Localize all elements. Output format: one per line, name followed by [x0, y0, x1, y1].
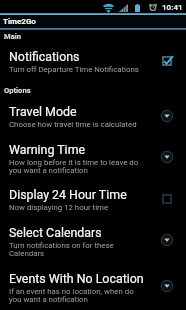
- staticText: 10:41: [162, 3, 183, 12]
- staticText: Travel Mode: [9, 104, 77, 119]
- staticText: Select Calendars: [9, 225, 102, 240]
- button[interactable]: Warning Time: [0, 135, 186, 181]
- staticText: Choose how travel time is calculated: [9, 120, 137, 129]
- staticText: How long before it is time to leave do y…: [9, 158, 139, 175]
- button[interactable]: Select Calendars: [0, 218, 186, 264]
- staticText: Options: [4, 86, 31, 95]
- staticText: Warning Time: [9, 142, 86, 157]
- button[interactable]: Travel Mode: [0, 98, 186, 135]
- staticText: Notifications: [9, 49, 80, 64]
- staticText: Turn off Departure Time Notifications: [9, 65, 139, 74]
- staticText: Now displaying 12 hour time: [9, 203, 109, 212]
- staticText: Display 24 Hour Time: [9, 187, 127, 202]
- staticText: If an event has no location, when do you…: [9, 287, 134, 304]
- button[interactable]: Expand: [158, 107, 176, 125]
- staticText: Main: [4, 32, 21, 41]
- staticText: Time2Go: [3, 17, 36, 26]
- button[interactable]: Unchecked: [158, 190, 176, 208]
- button[interactable]: Display 24 Hour Time: [0, 181, 186, 218]
- staticText: Turn notifications on for these Calendar…: [9, 241, 114, 258]
- button[interactable]: Expand: [158, 277, 176, 295]
- button[interactable]: Notifications: [0, 43, 186, 80]
- button[interactable]: Events With No Location: [0, 264, 186, 310]
- button[interactable]: Expand: [158, 148, 176, 166]
- button[interactable]: Checked: [158, 52, 176, 70]
- button[interactable]: Expand: [158, 231, 176, 249]
- staticText: Events With No Location: [9, 271, 144, 286]
